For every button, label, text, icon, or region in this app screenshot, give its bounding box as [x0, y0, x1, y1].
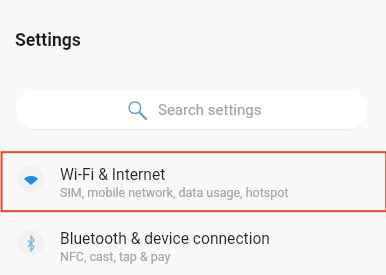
button[interactable]: Wi-Fi & Internet — [0, 155, 386, 217]
staticText: Settings — [15, 30, 81, 51]
staticText: Bluetooth & device connection — [60, 230, 270, 248]
button[interactable]: Bluetooth & device connection — [0, 219, 386, 275]
staticText: NFC, cast, tap & pay — [60, 249, 171, 264]
button[interactable]: Search settings — [16, 90, 367, 129]
staticText: Search settings — [158, 101, 262, 119]
staticText: SIM, mobile network, data usage, hotspot — [60, 185, 289, 200]
staticText: Wi-Fi & Internet — [60, 166, 166, 184]
